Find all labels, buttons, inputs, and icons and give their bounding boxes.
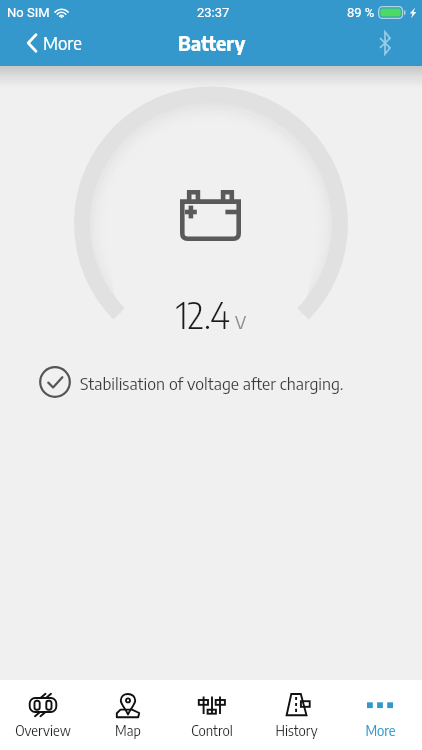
staticText: No SIM [7,5,50,20]
button[interactable]: Bluetooth [361,26,422,60]
staticText: 12.4 [176,292,230,337]
button[interactable]: Overview [0,680,85,750]
staticText: More [43,31,82,53]
staticText: Map [115,722,141,740]
staticText: Stabilisation of voltage after charging. [80,372,344,393]
staticText: Control [191,722,233,740]
button[interactable]: History [254,680,338,750]
staticText: 89 % [347,5,375,20]
staticText: V [235,310,247,332]
staticText: More [365,722,396,740]
button[interactable]: More [338,680,422,750]
button[interactable]: More [0,24,96,62]
staticText: 23:37 [197,5,230,20]
staticText: History [275,722,318,740]
staticText: Battery [178,30,246,55]
button[interactable]: Control [170,680,254,750]
staticText: Overview [15,722,71,740]
button[interactable]: Map [85,680,170,750]
